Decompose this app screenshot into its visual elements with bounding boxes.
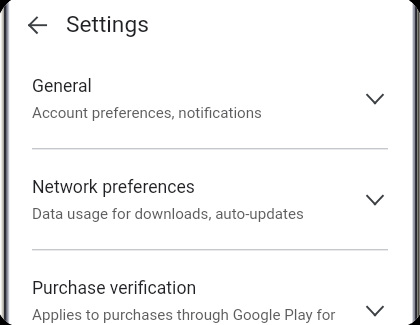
button[interactable]: Back [24,11,50,37]
staticText: Purchase verification [32,278,197,299]
staticText: General [32,76,92,97]
staticText: Applies to purchases through Google Play… [32,306,355,325]
staticText: Settings [66,11,149,38]
button[interactable]: Network preferences [0,149,420,249]
staticText: Data usage for downloads, auto-updates [32,205,304,223]
button[interactable]: General [0,48,420,148]
staticText: Network preferences [32,177,195,198]
staticText: Account preferences, notifications [32,104,262,122]
button[interactable]: Purchase verification [0,250,420,325]
